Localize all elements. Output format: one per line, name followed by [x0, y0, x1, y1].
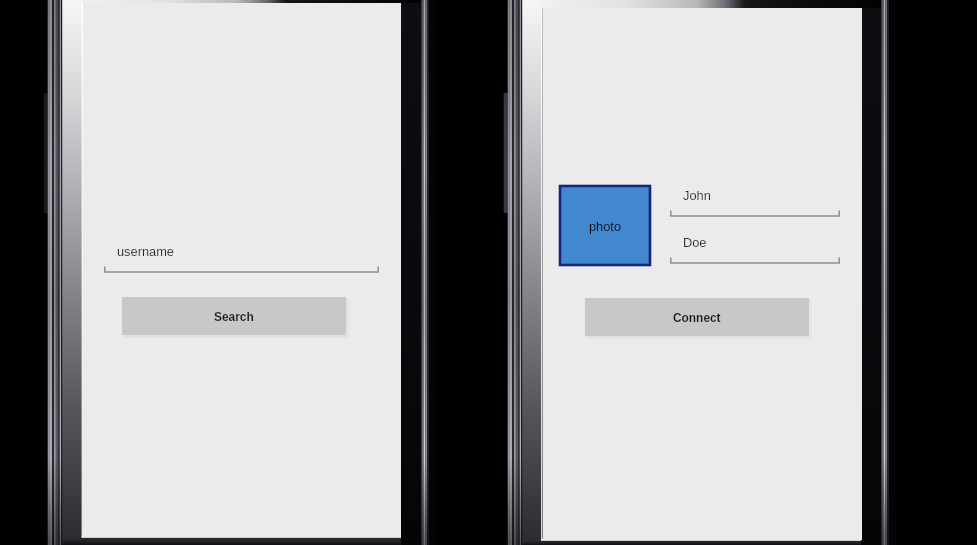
button[interactable]: John: [670, 186, 840, 218]
button[interactable]: Search: [122, 297, 346, 335]
staticText: Search: [214, 310, 254, 323]
staticText: Doe: [683, 235, 707, 249]
staticText: username: [117, 244, 174, 258]
button[interactable]: Connect: [585, 298, 809, 336]
button[interactable]: Doe: [670, 233, 840, 265]
staticText: photo: [589, 219, 622, 233]
staticText: Connect: [673, 311, 721, 324]
staticText: John: [683, 188, 711, 202]
button[interactable]: username: [104, 242, 379, 274]
button[interactable]: photo: [560, 186, 650, 265]
